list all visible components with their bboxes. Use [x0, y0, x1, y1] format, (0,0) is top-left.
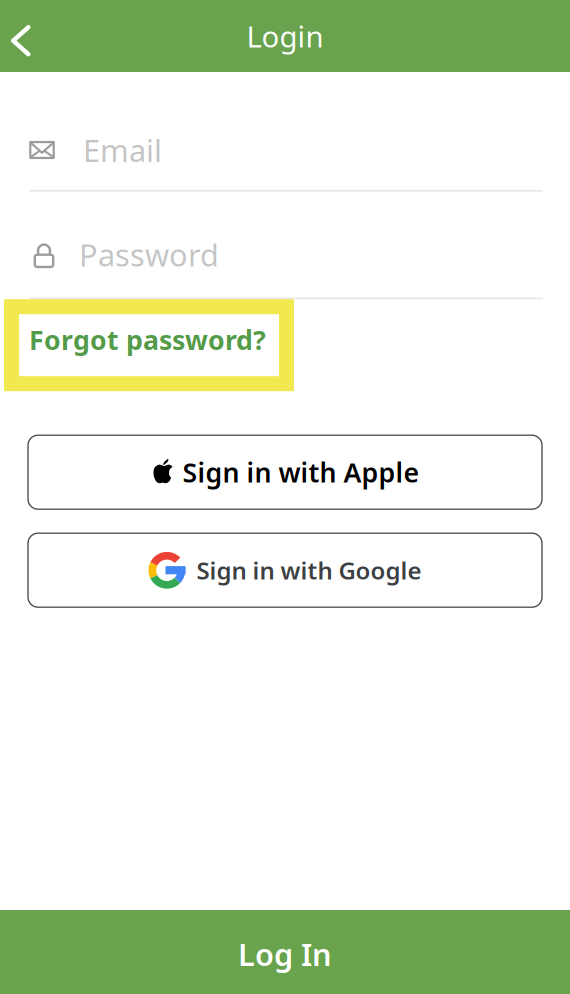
staticText: Log In: [238, 934, 332, 974]
staticText: Forgot password?: [29, 322, 266, 357]
button[interactable]: Log In: [0, 910, 570, 994]
staticText: Password: [79, 234, 219, 275]
button[interactable]: Sign in with Apple: [28, 435, 542, 509]
staticText: Login: [246, 16, 323, 55]
button[interactable]: Forgot password?: [4, 299, 294, 391]
staticText: Email: [83, 130, 162, 170]
button[interactable]: Back: [0, 5, 56, 67]
staticText: Sign in with Apple: [182, 454, 419, 490]
staticText: Sign in with Google: [196, 554, 421, 586]
button[interactable]: Sign in with Google: [28, 533, 542, 607]
